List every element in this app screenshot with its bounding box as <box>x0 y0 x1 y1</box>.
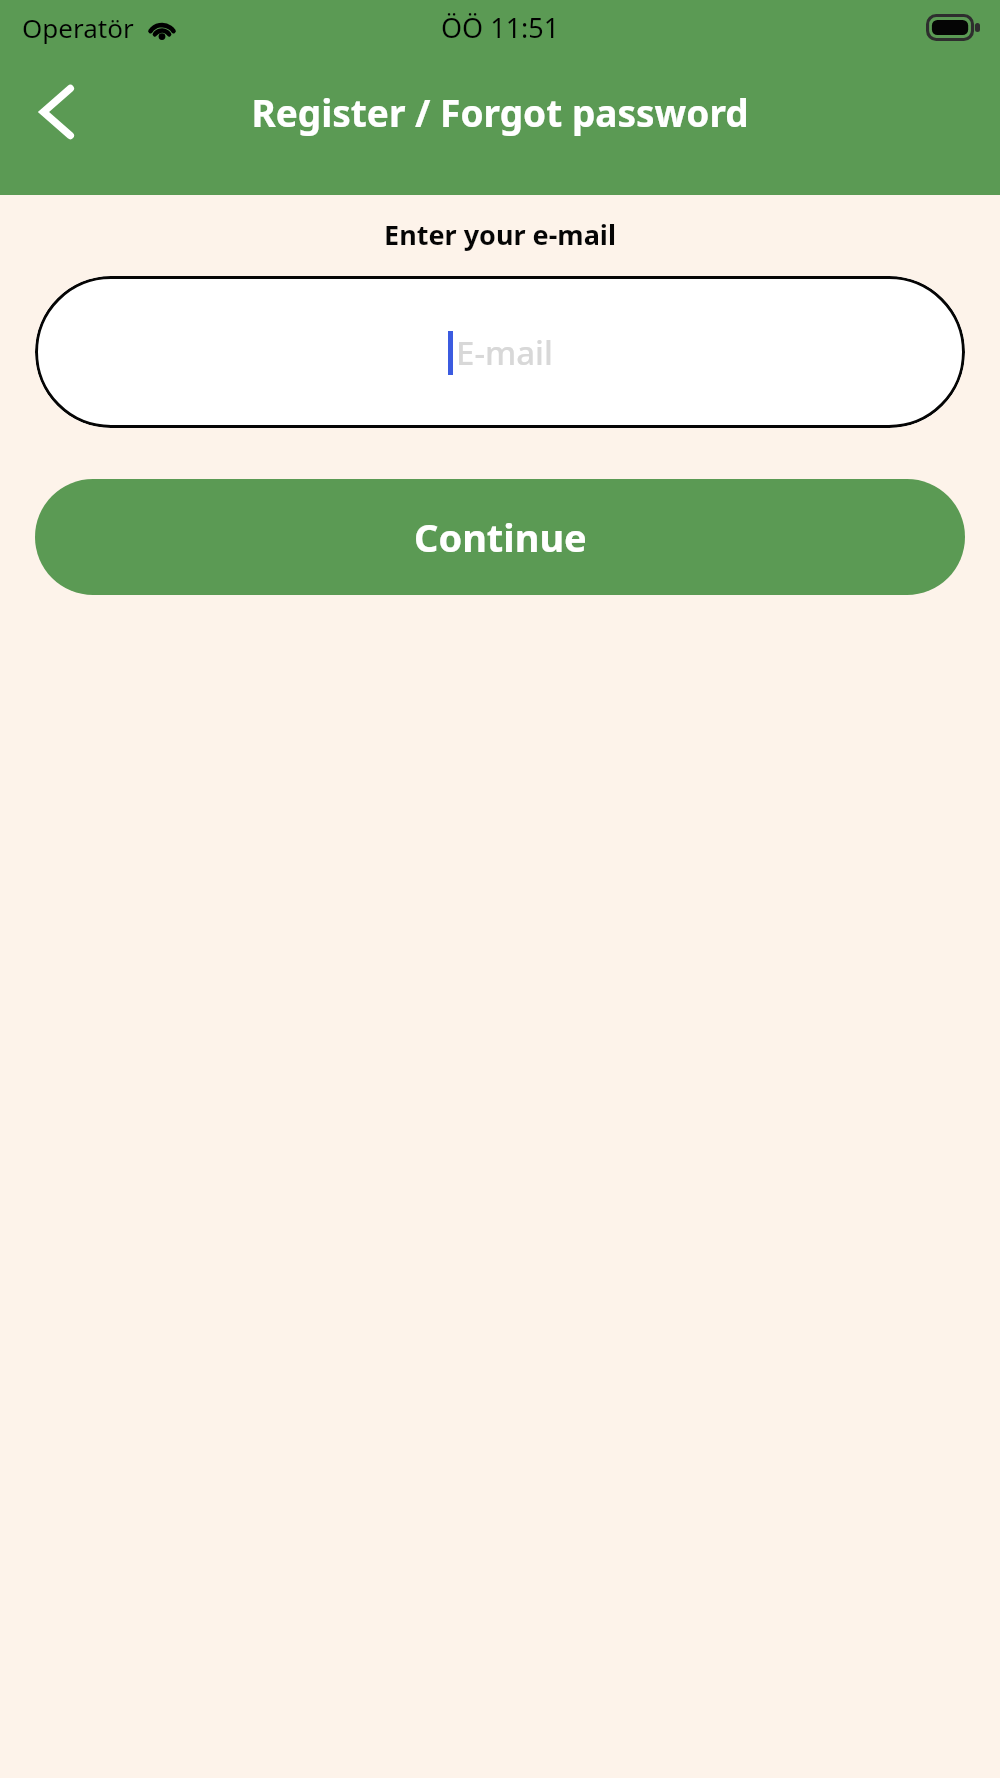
staticText: ÖÖ 11:51 <box>441 9 560 46</box>
button[interactable]: Back <box>14 70 98 154</box>
staticText: E-mail <box>456 330 553 375</box>
staticText: Enter your e-mail <box>0 216 1000 253</box>
other: Wi-Fi <box>146 14 178 40</box>
button[interactable]: Continue <box>35 479 965 595</box>
staticText: Operatör <box>22 10 134 45</box>
other: Battery full <box>926 14 980 41</box>
button[interactable]: E-mail <box>35 276 965 428</box>
staticText: Register / Forgot password <box>251 87 749 137</box>
staticText: Continue <box>414 511 587 563</box>
